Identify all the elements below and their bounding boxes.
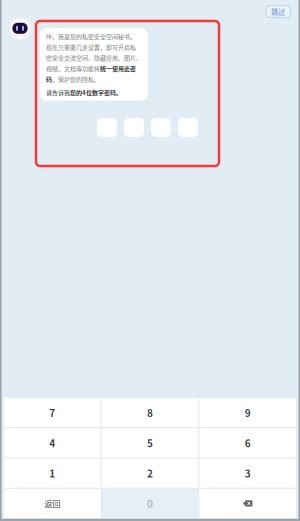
button[interactable]: 2	[102, 458, 198, 488]
staticText: 5	[147, 436, 153, 450]
staticText: 返回	[44, 497, 60, 509]
button[interactable]: 3	[199, 458, 296, 488]
button[interactable]: 9	[199, 398, 296, 427]
button[interactable]: 6	[199, 428, 296, 457]
staticText: 密安全交流空间、隐藏应用、图片、	[46, 53, 142, 62]
staticText: 视频、文档等功能将	[46, 64, 100, 73]
staticText: 您的4位数字密码。	[70, 88, 122, 97]
button[interactable]: 5	[102, 428, 198, 457]
staticText: 2	[147, 466, 153, 480]
button[interactable]: 7	[4, 398, 101, 427]
staticText: 4	[49, 436, 55, 450]
staticText: 8	[147, 405, 153, 420]
staticText: 7	[49, 405, 55, 420]
staticText: 3	[245, 466, 251, 480]
staticText: 0	[147, 496, 153, 511]
staticText: 1	[49, 466, 55, 480]
staticText: Hi，我是您的私密安全空间秘书。	[46, 32, 136, 41]
button[interactable]: 0	[102, 489, 198, 518]
staticText: 请告诉我	[46, 88, 70, 97]
button[interactable]: 跳过	[266, 5, 290, 17]
staticText: 跳过	[271, 6, 285, 16]
staticText: 统一使用此密	[100, 64, 136, 73]
button[interactable]: 1	[4, 458, 101, 488]
button[interactable]: Delete	[199, 489, 296, 518]
staticText: 6	[245, 436, 251, 450]
staticText: 9	[245, 405, 251, 420]
staticText: 码	[46, 75, 52, 83]
staticText: ，保护您的隐私。	[52, 75, 100, 83]
button[interactable]: 4	[4, 428, 101, 457]
button[interactable]: 返回	[4, 489, 101, 518]
staticText: 现在只需要几步设置，即可开启私	[46, 43, 136, 51]
button[interactable]: 8	[102, 398, 198, 427]
